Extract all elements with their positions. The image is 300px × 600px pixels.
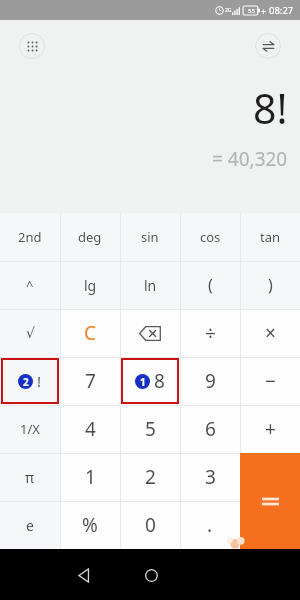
staticText: %	[82, 512, 98, 538]
staticText: 4	[85, 416, 96, 442]
button[interactable]: tan	[240, 213, 300, 261]
button[interactable]: lg	[60, 261, 120, 309]
button[interactable]: cos	[180, 213, 240, 261]
staticText: 2nd	[18, 228, 42, 246]
staticText: deg	[78, 228, 102, 246]
button[interactable]: 5	[120, 405, 180, 453]
button[interactable]: ln	[120, 261, 180, 309]
staticText: 2G	[225, 7, 232, 14]
staticText: 6	[205, 416, 216, 442]
button[interactable]: 2nd	[0, 213, 60, 261]
button[interactable]: Back	[65, 557, 101, 593]
button[interactable]: 6	[180, 405, 240, 453]
staticText: +	[265, 416, 276, 442]
staticText: 5	[145, 416, 156, 442]
staticText: 7	[85, 368, 96, 394]
other: Backspace	[139, 326, 161, 341]
staticText: +	[261, 5, 267, 17]
button[interactable]: 1	[120, 357, 180, 405]
staticText: = 40,320	[212, 146, 288, 172]
staticText: C	[84, 320, 97, 346]
staticText: sin	[141, 228, 159, 246]
staticText: −	[265, 368, 276, 394]
button[interactable]: )	[240, 261, 300, 309]
button[interactable]: 1/X	[0, 405, 60, 453]
button[interactable]: 2	[0, 357, 60, 405]
staticText: 2	[145, 464, 156, 490]
button[interactable]: 0	[120, 501, 180, 549]
button[interactable]: ×	[240, 309, 300, 357]
button[interactable]: 1	[60, 453, 120, 501]
button[interactable]: Switch calculator mode	[255, 33, 281, 59]
staticText: 1	[85, 464, 96, 490]
staticText: π	[25, 468, 35, 487]
staticText: 55	[248, 7, 255, 15]
staticText: 9	[205, 368, 216, 394]
button[interactable]: ÷	[180, 309, 240, 357]
staticText: 1	[140, 375, 146, 389]
staticText: 08:27	[269, 4, 294, 17]
button[interactable]: 7	[60, 357, 120, 405]
button[interactable]: Equals	[240, 453, 300, 549]
button[interactable]: History	[19, 33, 45, 59]
button[interactable]: √	[0, 309, 60, 357]
staticText: (	[208, 274, 213, 296]
button[interactable]: ^	[0, 261, 60, 309]
button[interactable]: +	[240, 405, 300, 453]
staticText: 0	[145, 512, 156, 538]
staticText: cos	[200, 228, 221, 246]
staticText: lg	[84, 276, 97, 295]
button[interactable]: %	[60, 501, 120, 549]
staticText: 8	[154, 368, 165, 394]
staticText: 1/X	[20, 420, 40, 438]
button[interactable]: Backspace	[120, 309, 180, 357]
staticText: e	[26, 516, 34, 535]
staticText: )	[268, 274, 273, 296]
button[interactable]: 2	[120, 453, 180, 501]
staticText: ×	[265, 320, 276, 346]
staticText: 3	[205, 464, 216, 490]
button[interactable]: C	[60, 309, 120, 357]
button[interactable]: .	[180, 501, 240, 549]
button[interactable]: Home	[133, 557, 169, 593]
staticText: 2	[23, 375, 29, 389]
button[interactable]: (	[180, 261, 240, 309]
staticText: ln	[144, 276, 157, 295]
staticText: √	[26, 325, 35, 341]
staticText: tan	[260, 228, 281, 246]
staticText: .	[207, 512, 213, 538]
staticText: ÷	[205, 320, 216, 346]
button[interactable]: π	[0, 453, 60, 501]
button[interactable]: 4	[60, 405, 120, 453]
staticText: ^	[26, 276, 34, 294]
button[interactable]: e	[0, 501, 60, 549]
button[interactable]: sin	[120, 213, 180, 261]
staticText: !	[37, 371, 42, 391]
button[interactable]: deg	[60, 213, 120, 261]
button[interactable]: 9	[180, 357, 240, 405]
staticText: 8!	[253, 80, 288, 136]
button[interactable]: −	[240, 357, 300, 405]
button[interactable]: 3	[180, 453, 240, 501]
